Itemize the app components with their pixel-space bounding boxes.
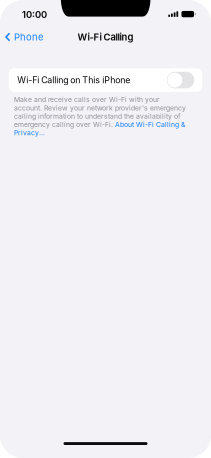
staticText: Privacy... xyxy=(14,129,45,137)
button[interactable]: About Wi-Fi Calling & xyxy=(115,120,185,129)
staticText: calling information to understand the av… xyxy=(14,112,181,120)
staticText: Wi-Fi Calling on This iPhone xyxy=(17,75,130,85)
staticText: Phone xyxy=(14,31,43,43)
button[interactable]: Wi-Fi Calling on This iPhone xyxy=(9,68,202,92)
staticText: About Wi-Fi Calling & xyxy=(115,120,185,129)
button[interactable]: Privacy... xyxy=(14,129,201,137)
staticText: 10:00 xyxy=(22,9,47,20)
staticText: emergency calling over Wi-Fi. xyxy=(14,120,115,129)
staticText: Make and receive calls over Wi-Fi with y… xyxy=(14,95,160,104)
staticText: Wi-Fi Calling xyxy=(77,31,133,43)
button[interactable]: Phone xyxy=(0,27,47,47)
staticText: account. Review your network provider's … xyxy=(14,104,186,112)
